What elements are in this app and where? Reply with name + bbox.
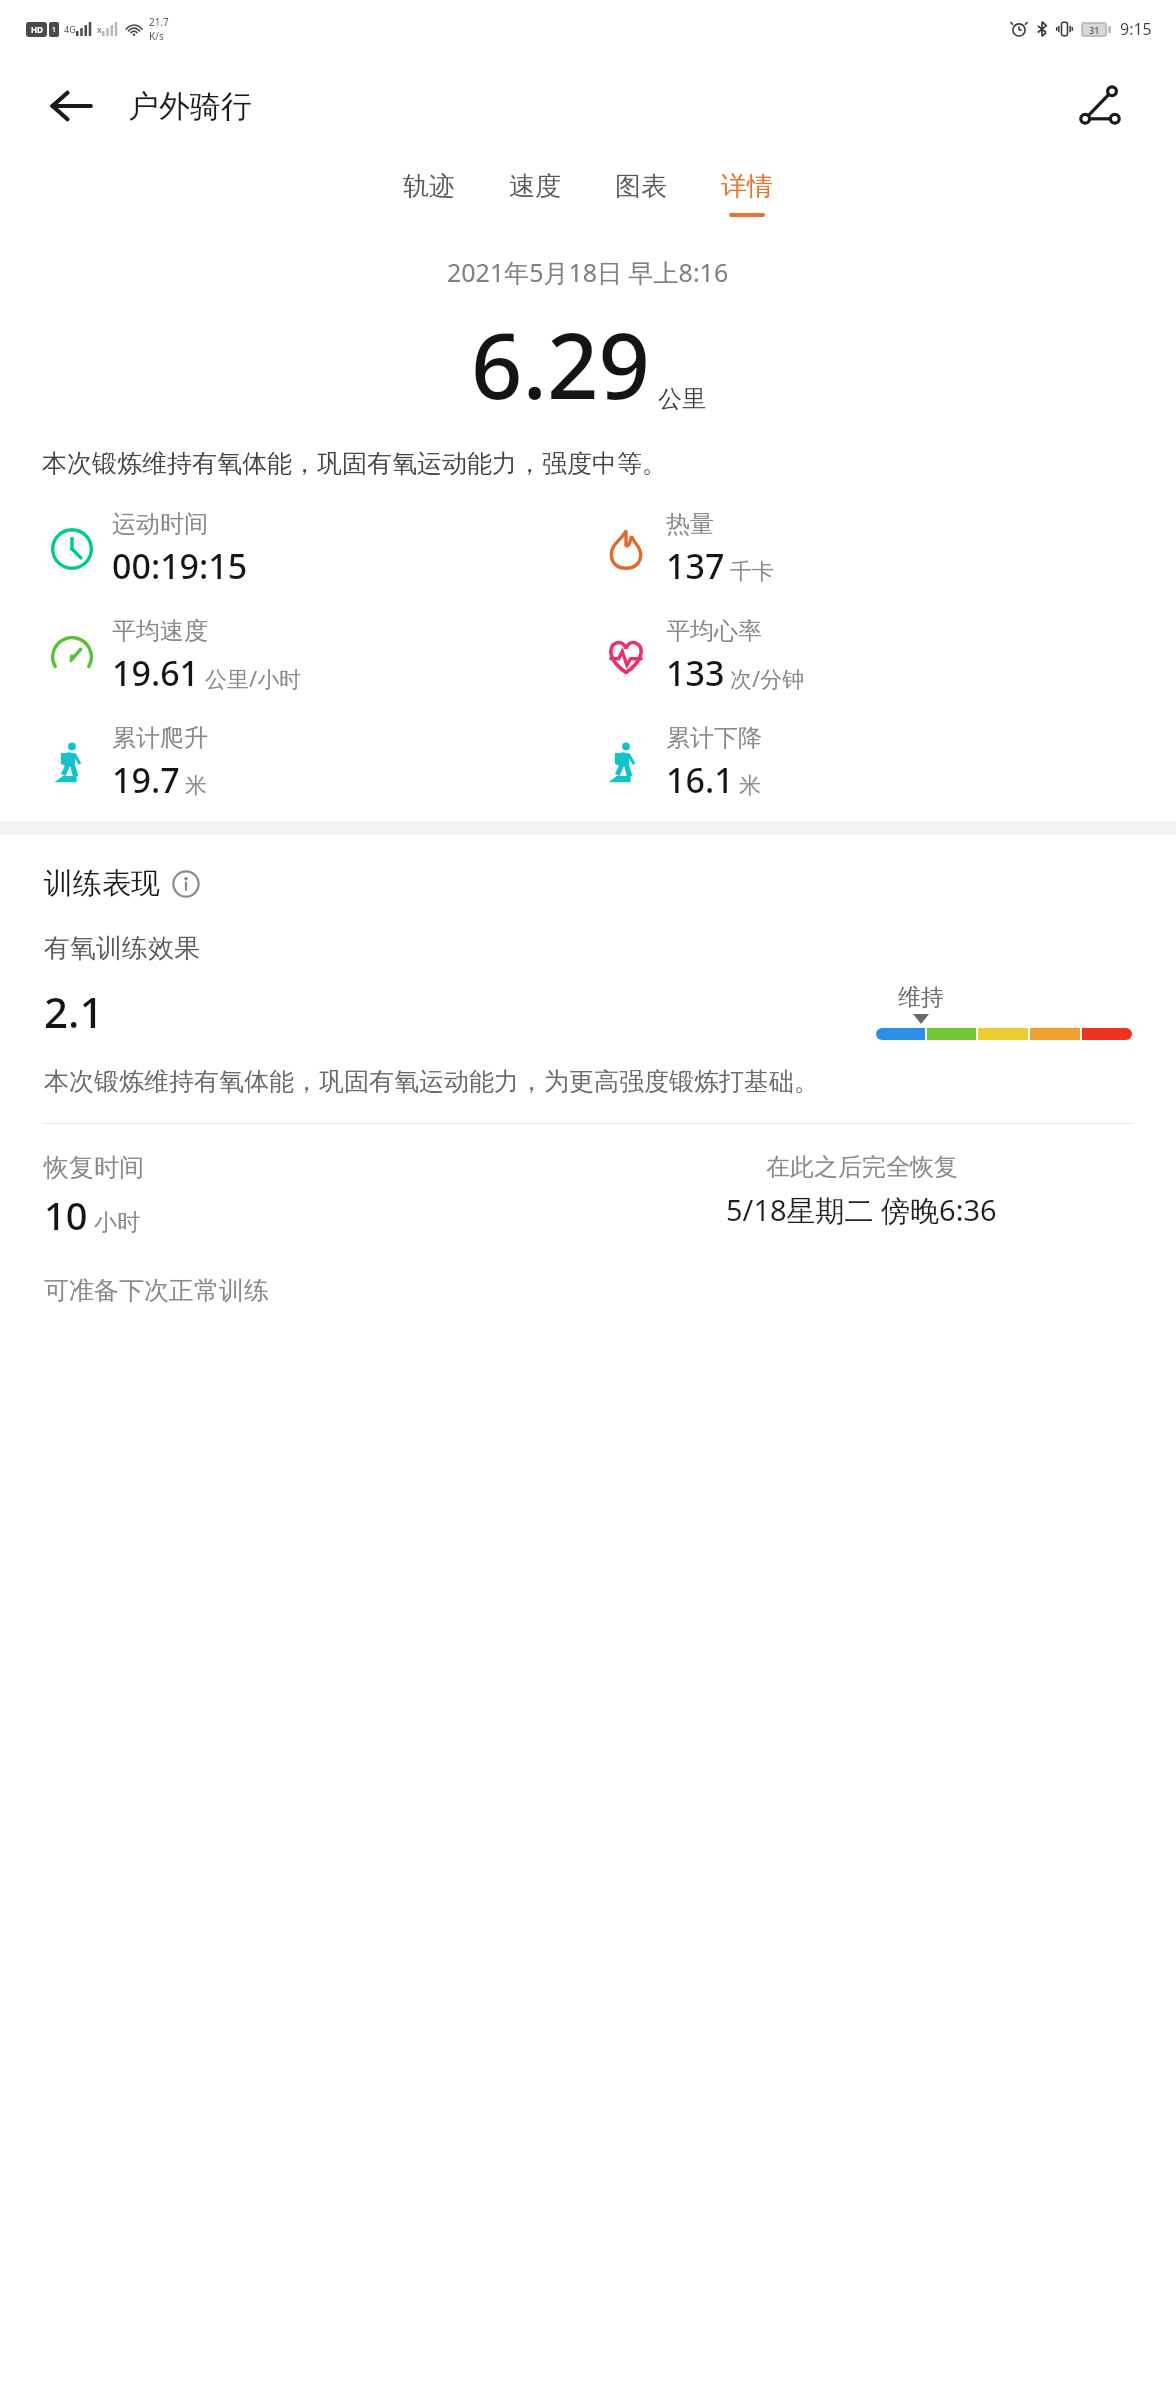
staticText: 19.7 — [112, 757, 180, 803]
staticText: 6.29 — [471, 303, 650, 426]
staticText: 137 — [666, 543, 725, 589]
button[interactable]: 热量 — [600, 509, 774, 589]
staticText: 133 — [666, 650, 725, 696]
staticText: HD — [31, 24, 43, 35]
button[interactable]: Back — [40, 75, 102, 137]
button[interactable]: 累计爬升 — [46, 723, 208, 803]
button[interactable]: 平均心率 — [600, 616, 805, 696]
staticText: 16.1 — [666, 757, 734, 803]
staticText: 次/分钟 — [730, 663, 805, 693]
staticText: 米 — [185, 772, 207, 800]
button[interactable]: 图表 — [609, 166, 673, 221]
staticText: 累计下降 — [666, 723, 762, 753]
staticText: 公里 — [658, 384, 706, 414]
staticText: 轨迹 — [403, 170, 455, 203]
staticText: K/s — [149, 29, 164, 43]
staticText: 小时 — [94, 1208, 140, 1237]
staticText: 10 — [44, 1189, 88, 1241]
button[interactable]: 详情 — [715, 166, 779, 221]
staticText: 2021年5月18日 早上8:16 — [447, 255, 729, 289]
staticText: 平均心率 — [666, 616, 762, 646]
button[interactable]: 训练表现 — [44, 865, 200, 902]
staticText: 米 — [739, 772, 761, 800]
staticText: 千卡 — [730, 558, 774, 586]
button[interactable]: 轨迹 — [397, 166, 461, 221]
button[interactable]: 累计下降 — [600, 723, 762, 803]
staticText: 4G — [64, 23, 76, 35]
button[interactable]: 运动时间 — [46, 509, 248, 589]
staticText: 31 — [1089, 24, 1100, 35]
staticText: 5/18星期二 傍晚6:36 — [726, 1190, 997, 1230]
staticText: 本次锻炼维持有氧体能，巩固有氧运动能力，为更高强度锻炼打基础。 — [44, 1066, 1132, 1097]
staticText: 训练表现 — [44, 865, 160, 902]
staticText: 21.7 — [149, 15, 169, 29]
staticText: 速度 — [509, 170, 561, 203]
staticText: 00:19:15 — [112, 543, 248, 589]
staticText: 户外骑行 — [128, 87, 252, 126]
other: Info — [172, 870, 200, 898]
staticText: 可准备下次正常训练 — [44, 1275, 269, 1306]
staticText: 热量 — [666, 509, 714, 539]
staticText: 恢复时间 — [44, 1152, 144, 1183]
staticText: 在此之后完全恢复 — [766, 1152, 958, 1182]
staticText: 公里/小时 — [205, 663, 302, 693]
staticText: 9:15 — [1120, 18, 1152, 40]
button[interactable]: 平均速度 — [46, 616, 302, 696]
staticText: 本次锻炼维持有氧体能，巩固有氧运动能力，强度中等。 — [42, 448, 1134, 479]
staticText: 图表 — [615, 170, 667, 203]
staticText: 平均速度 — [112, 616, 208, 646]
staticText: 1 — [52, 25, 57, 35]
button[interactable]: 速度 — [503, 166, 567, 221]
staticText: 19.61 — [112, 650, 200, 696]
staticText: 有氧训练效果 — [44, 932, 200, 965]
staticText: 2.1 — [44, 983, 104, 1040]
staticText: 运动时间 — [112, 509, 208, 539]
staticText: x — [97, 23, 102, 35]
staticText: 累计爬升 — [112, 723, 208, 753]
staticText: 维持 — [898, 983, 944, 1012]
button[interactable]: Share — [1068, 74, 1132, 138]
staticText: 详情 — [721, 170, 773, 203]
